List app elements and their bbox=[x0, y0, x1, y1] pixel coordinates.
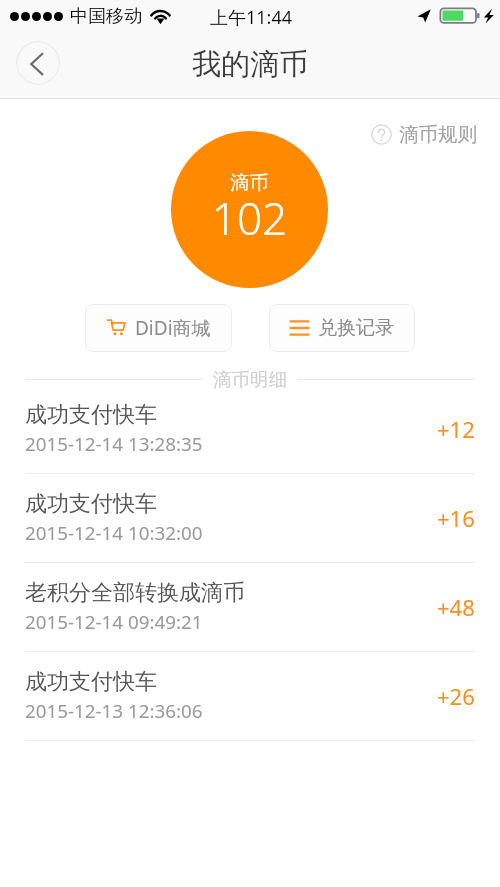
staticText: +48 bbox=[437, 592, 475, 622]
staticText: 兑换记录 bbox=[318, 316, 394, 340]
staticText: 中国移动 bbox=[70, 5, 142, 28]
staticText: +12 bbox=[437, 414, 475, 444]
button[interactable]: 滴币规则 bbox=[371, 120, 477, 149]
staticText: 滴币明细 bbox=[213, 368, 287, 390]
button[interactable]: 成功支付快车 bbox=[0, 385, 500, 474]
staticText: 成功支付快车 bbox=[25, 490, 157, 518]
staticText: 成功支付快车 bbox=[25, 401, 157, 429]
staticText: DiDi商城 bbox=[135, 315, 211, 341]
staticText: 滴币 bbox=[171, 171, 328, 195]
button[interactable]: DiDi商城 bbox=[85, 304, 232, 352]
button[interactable]: Back bbox=[16, 41, 60, 85]
staticText: 2015-12-13 12:36:06 bbox=[25, 698, 203, 724]
staticText: +16 bbox=[437, 503, 475, 533]
staticText: 滴币规则 bbox=[399, 122, 477, 147]
staticText: 2015-12-14 10:32:00 bbox=[25, 520, 203, 546]
staticText: 我的滴币 bbox=[0, 46, 500, 83]
staticText: 上午11:44 bbox=[210, 5, 293, 30]
button[interactable]: 成功支付快车 bbox=[0, 652, 500, 741]
button[interactable]: 老积分全部转换成滴币 bbox=[0, 563, 500, 652]
staticText: +26 bbox=[437, 681, 475, 711]
button[interactable]: 成功支付快车 bbox=[0, 474, 500, 563]
staticText: 102 bbox=[171, 188, 328, 248]
staticText: 2015-12-14 13:28:35 bbox=[25, 431, 203, 457]
staticText: 2015-12-14 09:49:21 bbox=[25, 609, 203, 635]
staticText: 成功支付快车 bbox=[25, 668, 157, 696]
staticText: 老积分全部转换成滴币 bbox=[25, 579, 245, 607]
button[interactable]: 兑换记录 bbox=[269, 304, 415, 352]
